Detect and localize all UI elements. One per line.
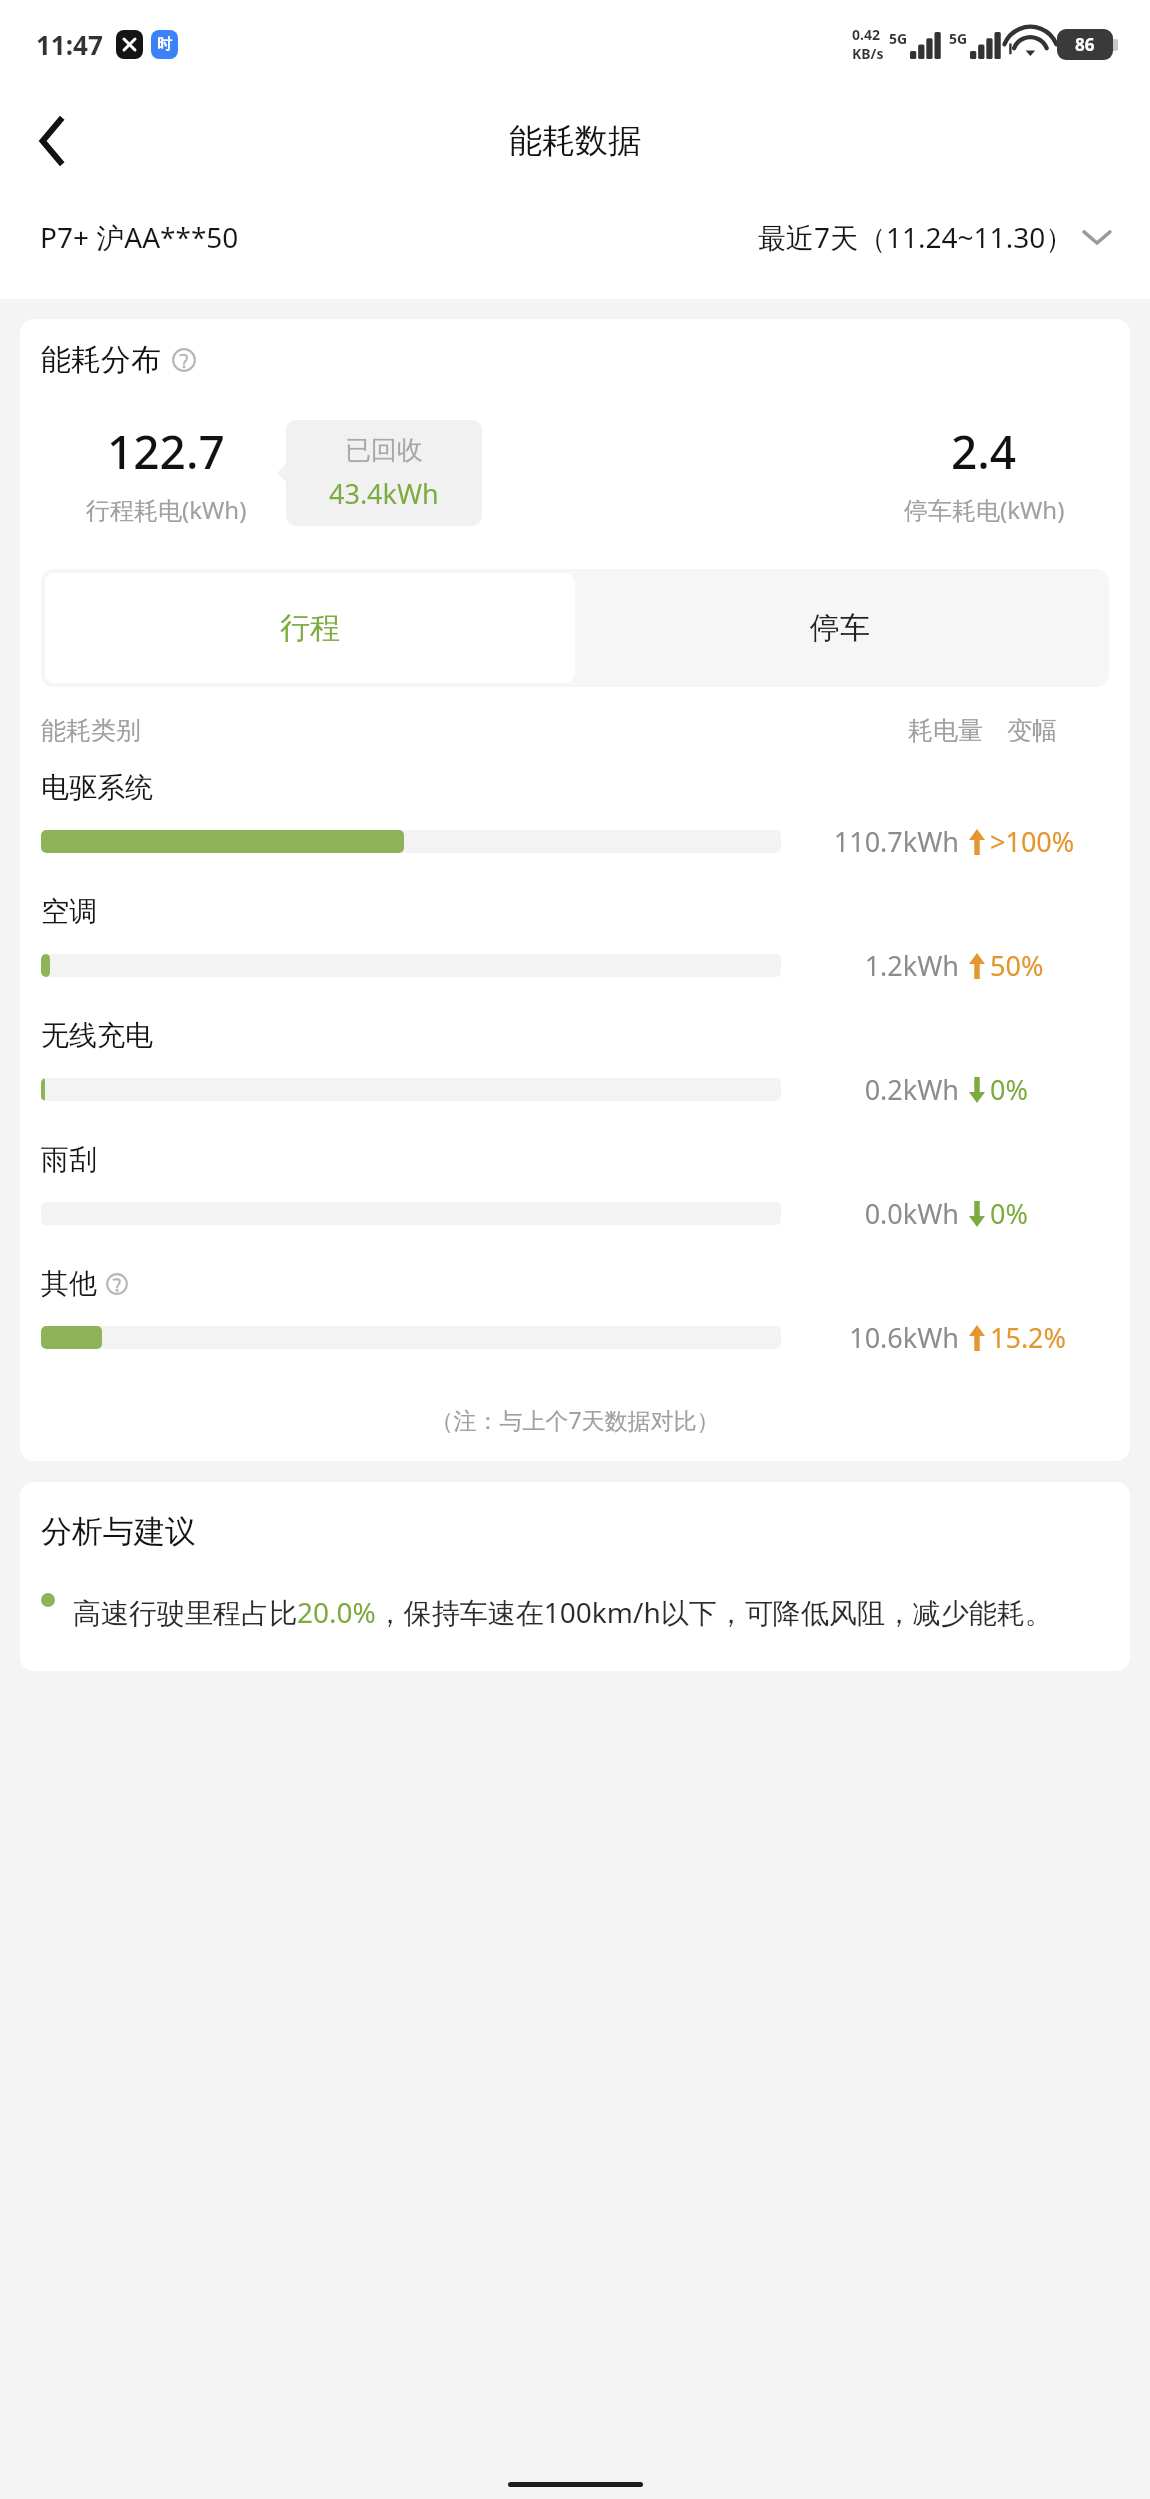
staticText: 122.7 xyxy=(107,420,225,483)
staticText: 2.4 xyxy=(951,420,1017,483)
staticText: 停车耗电(kWh) xyxy=(904,493,1065,526)
staticText: >100% xyxy=(990,823,1075,860)
staticText: 耗电量 xyxy=(908,715,983,746)
staticText: 行程耗电(kWh) xyxy=(86,493,247,526)
staticText: 5G xyxy=(889,29,908,48)
staticText: 雨刮 xyxy=(41,1142,97,1177)
button[interactable]: 说明 xyxy=(171,347,197,373)
staticText: 43.4kWh xyxy=(329,475,439,512)
staticText: 最近7天（11.24~11.30） xyxy=(758,218,1074,256)
staticText: 空调 xyxy=(41,894,97,929)
staticText: 5G xyxy=(949,29,968,48)
staticText: P7+ 沪AA***50 xyxy=(40,218,239,256)
button[interactable]: 最近7天（11.24~11.30） xyxy=(758,212,1110,262)
staticText: 0.0kWh xyxy=(799,1195,959,1232)
staticText: 50% xyxy=(990,947,1044,984)
staticText: 11:47 xyxy=(36,27,103,62)
staticText: 15.2% xyxy=(990,1319,1067,1356)
staticText: 能耗数据 xyxy=(509,120,641,162)
staticText: 86 xyxy=(1075,33,1095,56)
staticText: 110.7kWh xyxy=(799,823,959,860)
button[interactable]: 停车 xyxy=(575,573,1105,683)
staticText: （注：与上个7天数据对比） xyxy=(41,1404,1109,1435)
staticText: 能耗类别 xyxy=(41,715,141,746)
button[interactable]: 行程 xyxy=(45,573,575,683)
button[interactable]: 说明 xyxy=(105,1272,129,1296)
staticText: 0.42 xyxy=(852,25,880,44)
staticText: 高速行驶里程占比20.0%，保持车速在100km/h以下，可降低风阻，减少能耗。 xyxy=(73,1593,1053,1631)
staticText: 电驱系统 xyxy=(41,770,153,805)
staticText: 1.2kWh xyxy=(799,947,959,984)
staticText: 0.2kWh xyxy=(799,1071,959,1108)
staticText: 变幅 xyxy=(1007,715,1109,746)
staticText: KB/s xyxy=(852,44,884,63)
staticText: 时 xyxy=(157,35,172,54)
staticText: 0% xyxy=(990,1195,1028,1232)
staticText: 0% xyxy=(990,1071,1028,1108)
staticText: 10.6kWh xyxy=(799,1319,959,1356)
staticText: 停车 xyxy=(810,609,870,647)
staticText: 无线充电 xyxy=(41,1018,153,1053)
staticText: 其他 xyxy=(41,1266,97,1301)
staticText: 行程 xyxy=(280,609,340,647)
staticText: 已回收 xyxy=(345,434,423,467)
button[interactable]: Back xyxy=(18,106,88,176)
staticText: 分析与建议 xyxy=(41,1512,196,1551)
staticText: 能耗分布 xyxy=(41,341,161,379)
